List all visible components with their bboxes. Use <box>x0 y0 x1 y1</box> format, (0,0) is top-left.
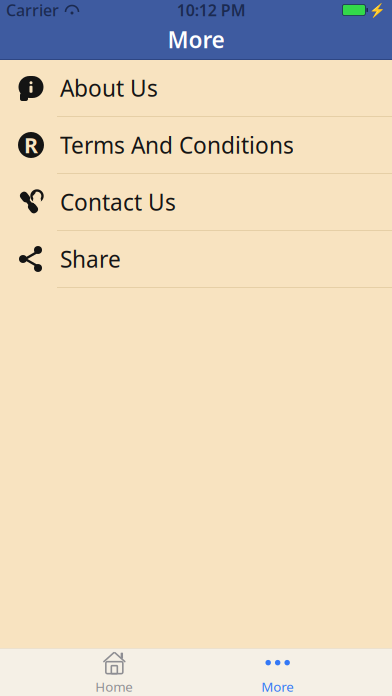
button[interactable]: R <box>0 117 392 174</box>
staticText: More <box>167 24 224 54</box>
staticText: Home <box>95 678 133 695</box>
button[interactable]: Contact Us <box>0 174 392 231</box>
staticText: Carrier <box>6 0 59 21</box>
staticText: More <box>261 678 294 695</box>
button[interactable]: Home <box>65 648 163 696</box>
button[interactable]: Share <box>0 231 392 288</box>
staticText: 10:12 PM <box>177 0 246 21</box>
button[interactable]: About Us <box>0 60 392 117</box>
staticText: Contact Us <box>60 187 176 217</box>
staticText: Share <box>60 244 121 274</box>
staticText: Terms And Conditions <box>60 130 294 160</box>
button[interactable]: More <box>229 648 327 696</box>
staticText: ⚡ <box>369 2 386 18</box>
staticText: R <box>24 131 38 159</box>
staticText: About Us <box>60 73 158 103</box>
